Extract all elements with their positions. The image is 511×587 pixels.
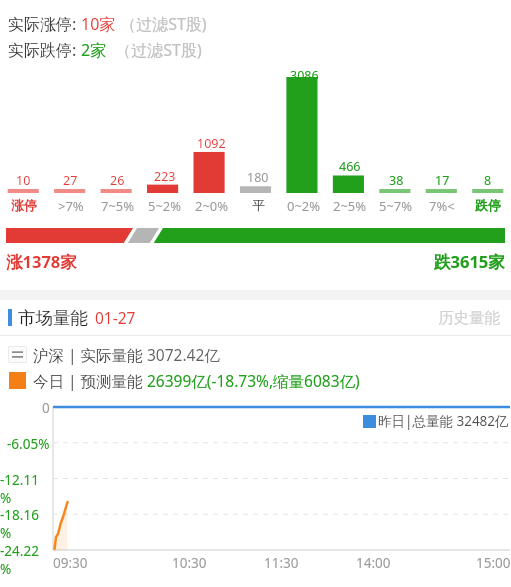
staticText: 涨1378家 bbox=[6, 250, 77, 273]
staticText: 11:30 bbox=[264, 554, 299, 572]
staticText: 0~2% bbox=[287, 197, 321, 215]
staticText: -6.05% bbox=[7, 435, 50, 453]
staticText: 5~7% bbox=[379, 197, 413, 215]
staticText: 市场量能 bbox=[18, 307, 88, 329]
staticText: 09:30 bbox=[53, 554, 88, 572]
staticText: 2~5% bbox=[333, 197, 367, 215]
staticText: 平 bbox=[252, 197, 265, 213]
staticText: 466 bbox=[339, 158, 361, 175]
staticText: 223 bbox=[154, 168, 176, 185]
staticText: -12.11% bbox=[0, 471, 50, 507]
staticText: （过滤ST股) bbox=[107, 39, 202, 61]
other: 实际量能 legend bbox=[8, 346, 27, 363]
staticText: 7%< bbox=[429, 197, 455, 215]
staticText: 跌停 bbox=[475, 197, 501, 213]
staticText: 今日 | 预测量能 bbox=[33, 370, 147, 391]
staticText: 15:00 bbox=[476, 554, 511, 572]
staticText: 实际跌停: bbox=[8, 39, 81, 61]
staticText: 38 bbox=[389, 172, 404, 189]
staticText: 跌3615家 bbox=[434, 250, 505, 273]
staticText: 10家 bbox=[81, 13, 116, 35]
staticText: 0 bbox=[42, 399, 50, 417]
staticText: 历史量能 bbox=[438, 308, 500, 328]
staticText: 10:30 bbox=[172, 554, 207, 572]
staticText: 7~5% bbox=[101, 197, 135, 215]
staticText: -18.16% bbox=[0, 506, 50, 542]
staticText: -24.22% bbox=[0, 542, 50, 578]
staticText: 180 bbox=[247, 169, 269, 186]
staticText: 涨停 bbox=[11, 197, 37, 213]
staticText: 26399亿(-18.73%,缩量6083亿) bbox=[147, 370, 360, 391]
staticText: 14:00 bbox=[356, 554, 391, 572]
staticText: 8 bbox=[484, 172, 492, 189]
staticText: 26 bbox=[110, 172, 125, 189]
staticText: 01-27 bbox=[95, 307, 136, 328]
staticText: 沪深 | 实际量能 bbox=[33, 344, 147, 365]
staticText: >7% bbox=[58, 197, 84, 215]
staticText: 昨日|总量能 32482亿 bbox=[378, 412, 509, 430]
button[interactable]: 市场量能 bbox=[0, 300, 511, 335]
staticText: 3086 bbox=[290, 67, 319, 84]
button[interactable]: 历史量能 bbox=[435, 305, 503, 331]
staticText: 27 bbox=[63, 172, 78, 189]
staticText: 5~2% bbox=[148, 197, 182, 215]
staticText: 10 bbox=[16, 172, 31, 189]
staticText: 2~0% bbox=[195, 197, 229, 215]
staticText: 17 bbox=[435, 172, 450, 189]
staticText: 1092 bbox=[197, 135, 226, 152]
staticText: 实际涨停: bbox=[8, 13, 81, 35]
staticText: 3072.42亿 bbox=[147, 344, 220, 365]
staticText: 2家 bbox=[81, 39, 107, 61]
staticText: （过滤ST股) bbox=[116, 13, 207, 35]
